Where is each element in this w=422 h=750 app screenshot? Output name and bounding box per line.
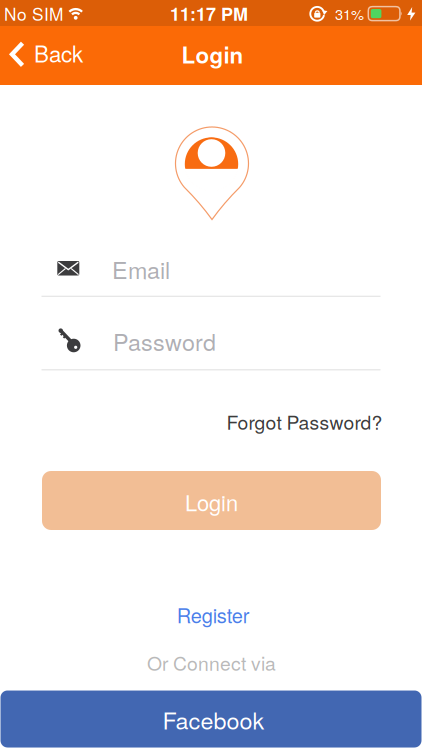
button[interactable]: Login [42, 471, 381, 530]
staticText: 11:17 PM [170, 0, 248, 26]
staticText: No SIM [4, 1, 63, 26]
staticText: Email [112, 252, 170, 286]
staticText: 31% [335, 3, 364, 24]
staticText: Password [113, 324, 216, 358]
staticText: Facebook [162, 703, 264, 736]
button[interactable]: Back [9, 38, 83, 70]
staticText: Back [34, 37, 83, 69]
staticText: Register [177, 600, 250, 629]
staticText: Login [185, 486, 238, 517]
button[interactable]: Register [177, 600, 250, 629]
button[interactable]: Facebook [0, 690, 421, 747]
button[interactable]: Forgot Password? [132, 408, 382, 435]
staticText: Login [181, 38, 243, 70]
staticText: Forgot Password? [226, 408, 382, 435]
staticText: Or Connect via [147, 649, 276, 676]
